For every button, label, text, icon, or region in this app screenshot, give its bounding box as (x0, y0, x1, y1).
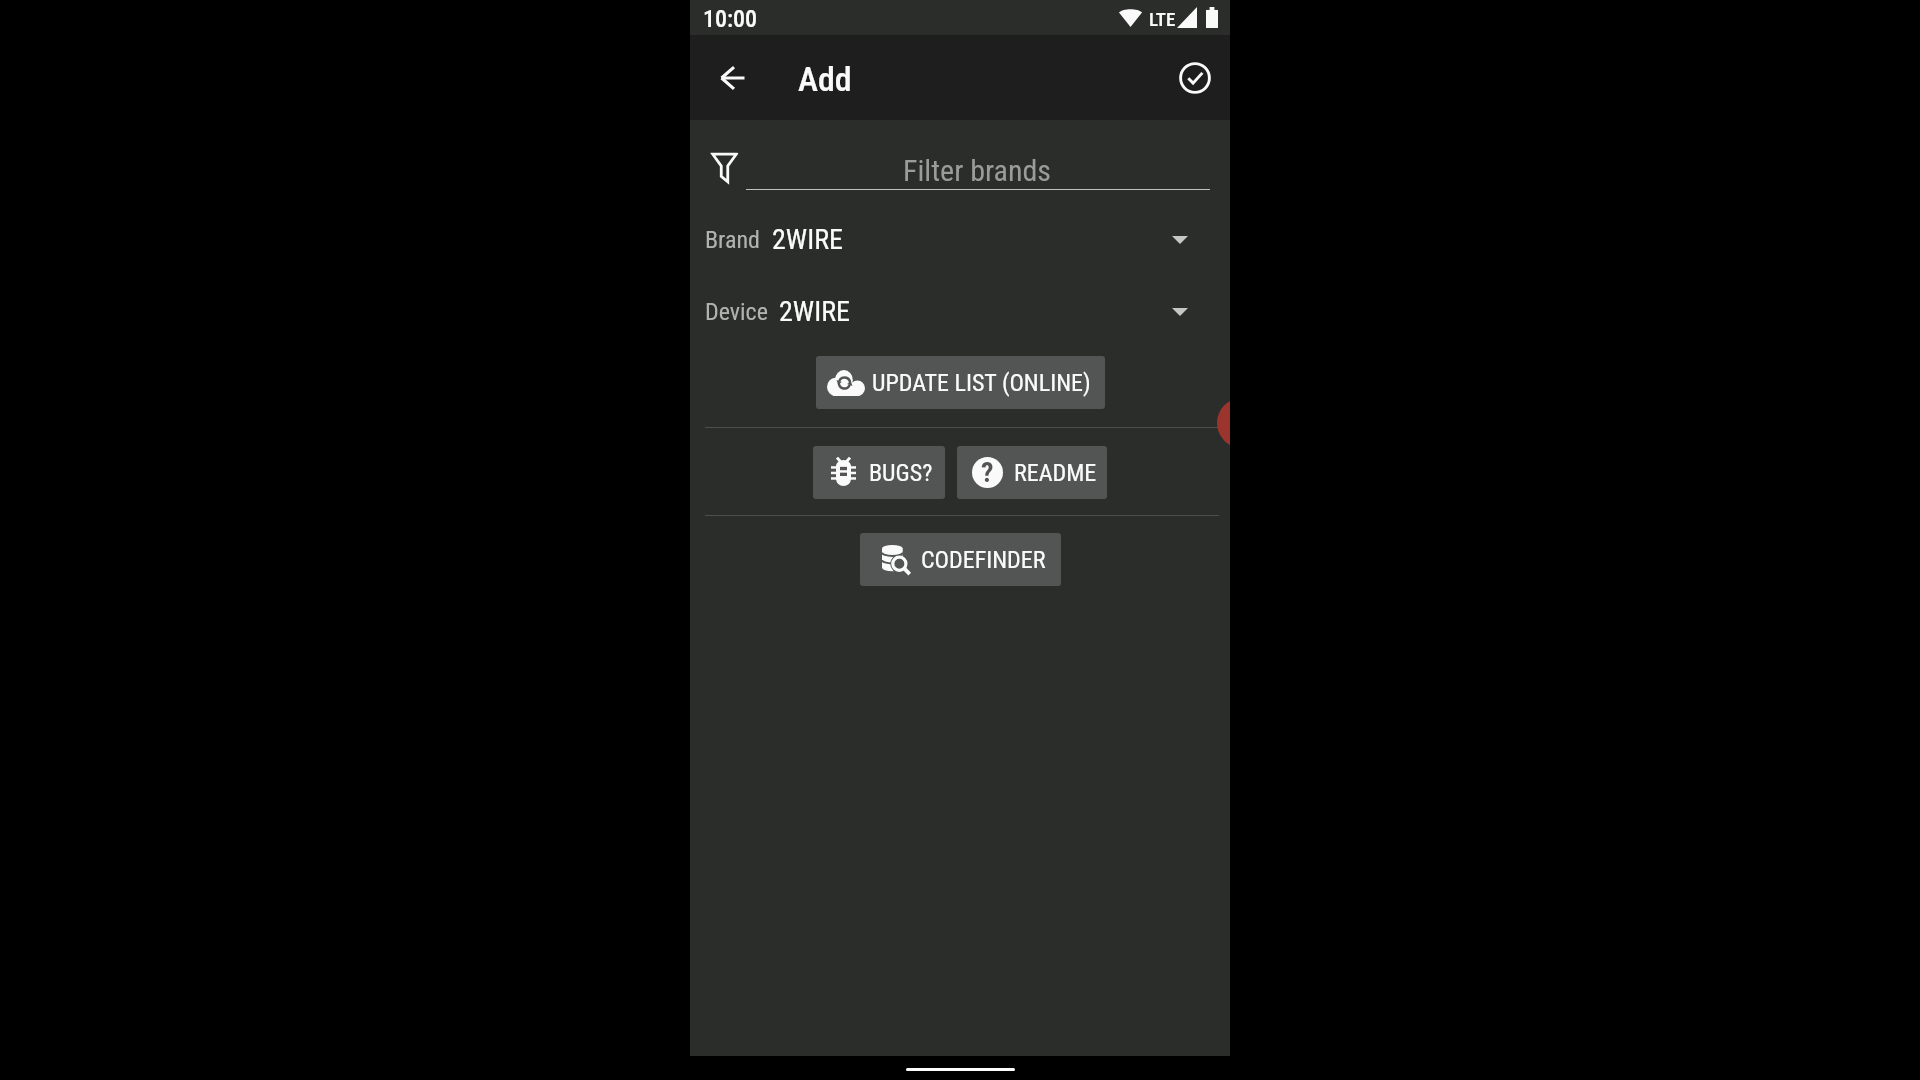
staticText: Filter brands (903, 153, 1051, 188)
button[interactable] (690, 216, 1230, 264)
staticText: UPDATE LIST (ONLINE) (872, 369, 1091, 397)
staticText: 2WIRE (772, 223, 843, 256)
button[interactable]: BUGS? (813, 446, 945, 499)
staticText: BUGS? (869, 459, 933, 487)
staticText: CODEFINDER (921, 546, 1046, 574)
button[interactable] (746, 148, 1212, 192)
staticText: ? (981, 456, 994, 487)
button[interactable]: ? (957, 446, 1107, 499)
button[interactable]: Navigate up (708, 54, 756, 102)
button[interactable]: UPDATE LIST (ONLINE) (816, 356, 1105, 409)
staticText: 10:00 (703, 5, 758, 33)
staticText: README (1014, 459, 1097, 487)
staticText: Brand (705, 226, 760, 254)
staticText: Add (798, 59, 852, 99)
button[interactable] (690, 288, 1230, 336)
button[interactable]: CODEFINDER (860, 533, 1061, 586)
button[interactable]: Confirm (1171, 54, 1219, 102)
staticText: Device (705, 298, 768, 326)
staticText: 2WIRE (779, 295, 850, 328)
button[interactable]: Filter (705, 147, 743, 189)
staticText: LTE (1149, 8, 1176, 30)
